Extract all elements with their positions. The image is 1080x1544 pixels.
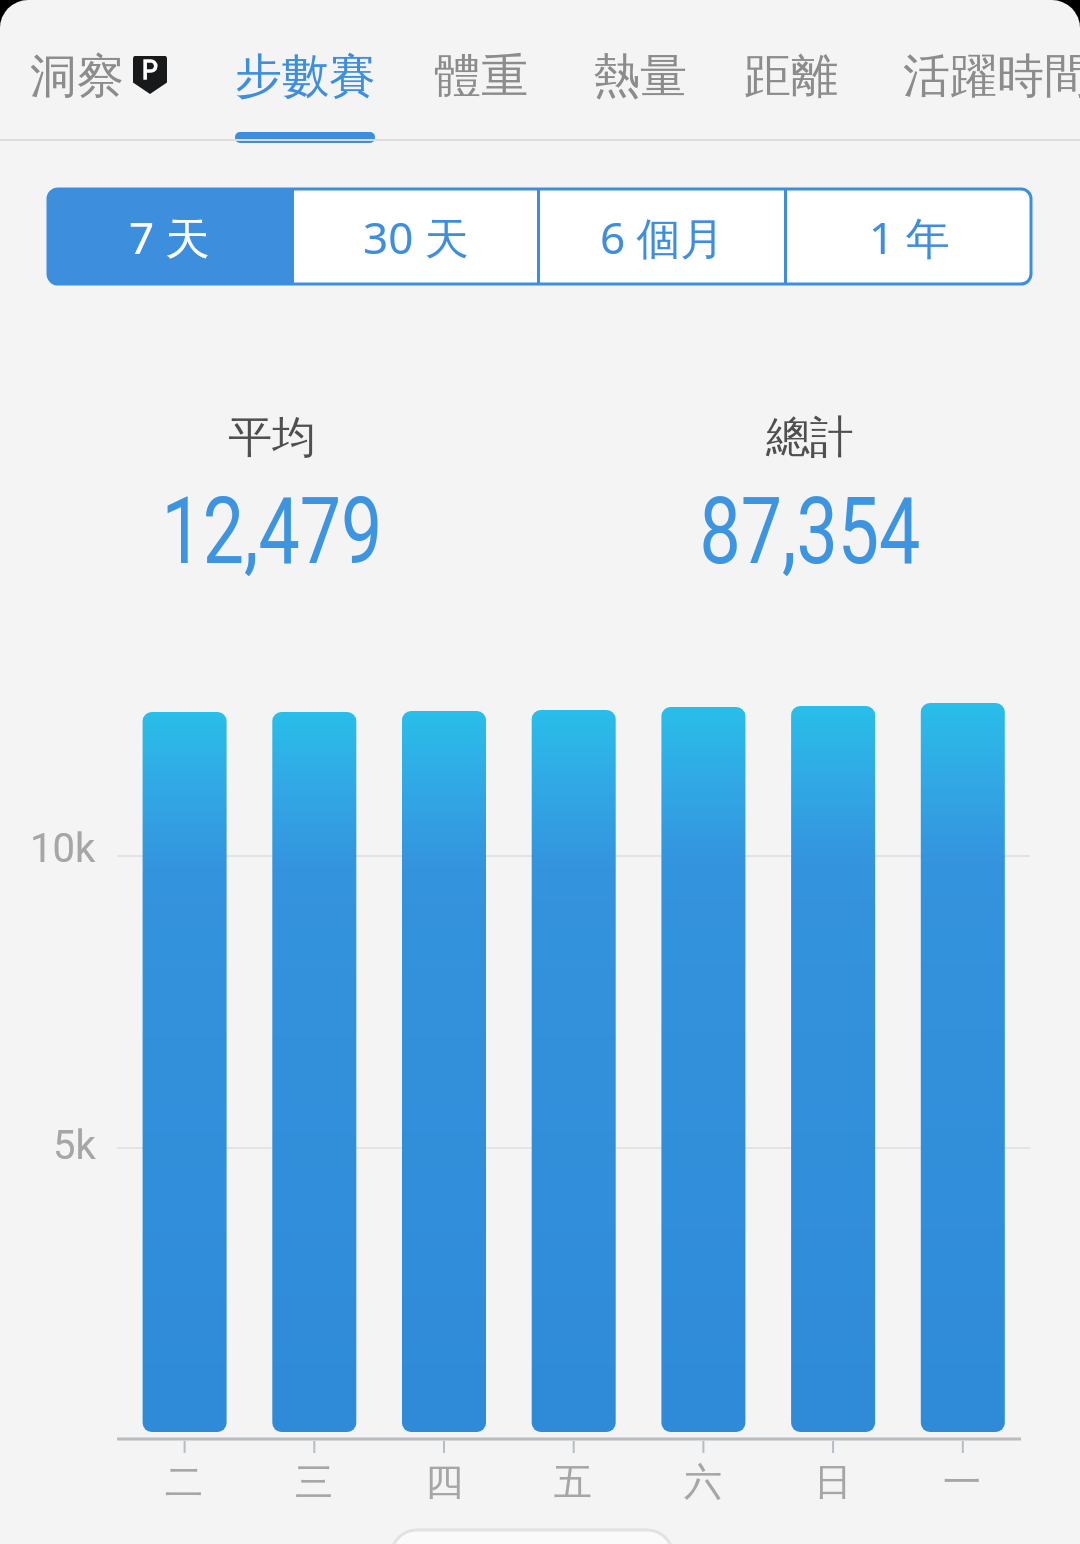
staticText: 日	[814, 1458, 852, 1506]
staticText: 10k	[30, 825, 96, 872]
staticText: 洞察	[30, 47, 124, 106]
staticText: 步數賽	[235, 47, 376, 106]
button[interactable]: 距離	[744, 36, 838, 116]
staticText: 距離	[744, 47, 838, 106]
staticText: 二	[165, 1458, 203, 1506]
staticText: 三	[295, 1458, 333, 1506]
button[interactable]: 體重	[434, 36, 528, 116]
staticText: 1 年	[869, 207, 950, 267]
staticText: 五	[554, 1458, 592, 1506]
staticText: 總計	[766, 410, 854, 465]
staticText: 87,354	[699, 477, 921, 586]
staticText: 7 天	[129, 207, 210, 267]
button[interactable]: 步數賽	[235, 36, 376, 116]
staticText: 平均	[228, 410, 316, 465]
button[interactable]: 6 個月	[540, 189, 784, 284]
button[interactable]: 7 天	[48, 189, 291, 284]
staticText: 一	[943, 1458, 981, 1506]
staticText: 6 個月	[600, 207, 725, 267]
staticText: 體重	[434, 47, 528, 106]
staticText: 12,479	[161, 477, 383, 586]
staticText: 30 天	[363, 207, 469, 267]
staticText: 六	[684, 1458, 722, 1506]
staticText: 四	[425, 1458, 463, 1506]
staticText: 活躍時間	[903, 47, 1080, 106]
staticText: P	[142, 56, 158, 85]
button[interactable]: 熱量	[593, 36, 687, 116]
button[interactable]: 1 年	[787, 189, 1031, 284]
staticText: 熱量	[593, 47, 687, 106]
button[interactable]: 30 天	[294, 189, 537, 284]
button[interactable]: 活躍時間	[903, 36, 1080, 116]
button[interactable]: 洞察	[30, 36, 124, 116]
staticText: 5k	[53, 1122, 96, 1169]
